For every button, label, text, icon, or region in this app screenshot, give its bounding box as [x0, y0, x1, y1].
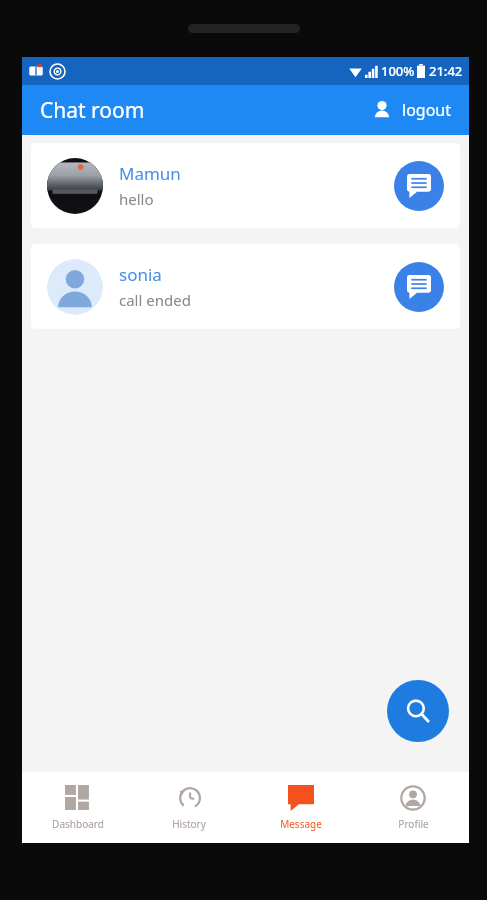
staticText: Profile: [398, 817, 429, 831]
button[interactable]: History: [133, 772, 245, 843]
staticText: 100%: [381, 62, 415, 80]
staticText: Chat room: [40, 96, 145, 125]
button[interactable]: Profile: [357, 772, 469, 843]
staticText: Mamun: [119, 162, 181, 185]
staticText: Message: [280, 817, 322, 831]
staticText: call ended: [119, 290, 191, 310]
button[interactable]: Search: [387, 680, 449, 742]
staticText: logout: [402, 99, 451, 121]
button[interactable]: Open chat with Mamun: [394, 161, 444, 211]
staticText: sonia: [119, 263, 162, 286]
button[interactable]: Open chat with sonia: [394, 262, 444, 312]
button[interactable]: logout: [367, 95, 455, 125]
staticText: hello: [119, 189, 154, 209]
button[interactable]: Mamun: [31, 143, 460, 228]
staticText: Dashboard: [52, 817, 104, 831]
button[interactable]: Message: [245, 772, 357, 843]
button[interactable]: sonia: [31, 244, 460, 329]
button[interactable]: Dashboard: [22, 772, 133, 843]
staticText: 21:42: [429, 62, 463, 80]
staticText: History: [172, 817, 206, 831]
